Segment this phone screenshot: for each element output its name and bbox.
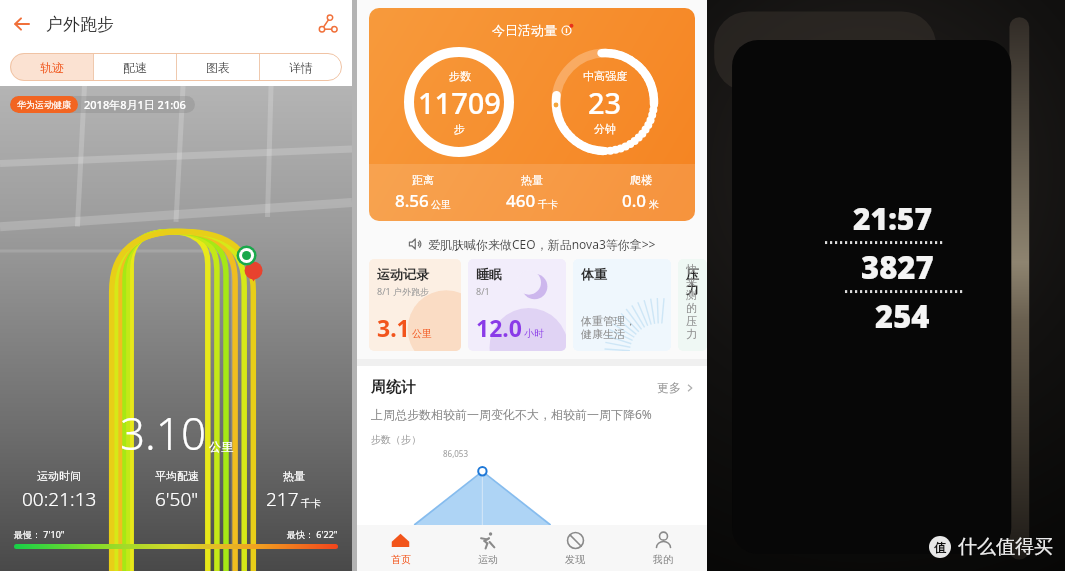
staticText: 体重管理， 健康生活 [581, 314, 636, 341]
staticText: 460 [506, 189, 536, 212]
staticText: 步 [454, 122, 465, 136]
staticText: 86,053 [443, 448, 469, 459]
staticText: 中高强度 [583, 69, 627, 83]
staticText: 21:57 [853, 198, 932, 239]
staticText: 热量 [283, 469, 305, 483]
staticText: 2018年8月1日 21:06 [84, 97, 186, 112]
staticText: 8/1 [476, 285, 490, 297]
staticText: 首页 [391, 553, 411, 566]
button[interactable]: 压力 [678, 259, 707, 351]
staticText: 户外跑步 [46, 14, 114, 35]
staticText: 最快： 6'22" [287, 528, 338, 540]
staticText: 距离 [412, 173, 434, 187]
button[interactable]: 首页 [357, 525, 444, 571]
staticText: 3.10 [120, 403, 207, 463]
staticText: 11709 [418, 83, 501, 122]
staticText: 发现 [565, 553, 585, 566]
staticText: 值 [934, 540, 946, 555]
staticText: 我的 [653, 553, 673, 566]
button[interactable]: 今日活动量 [369, 8, 695, 221]
staticText: 千卡 [538, 198, 558, 211]
button[interactable]: 周统计 [357, 366, 707, 525]
staticText: 分钟 [594, 122, 616, 136]
staticText: 运动 [478, 553, 498, 566]
staticText: 更多 [657, 380, 681, 395]
button[interactable]: 体重 [573, 259, 671, 351]
staticText: 轨迹 [40, 60, 64, 75]
button[interactable]: 发现 [531, 525, 619, 571]
staticText: 快来测 的压力 [686, 262, 707, 341]
staticText: 睡眠 [476, 266, 502, 282]
staticText: 上周总步数相较前一周变化不大，相较前一周下降6% [371, 406, 652, 422]
staticText: 配速 [123, 60, 147, 75]
staticText: 步数（步） [371, 433, 421, 446]
staticText: 今日活动量 [492, 22, 557, 38]
staticText: 图表 [206, 60, 230, 75]
staticText: 华为运动健康 [17, 99, 71, 110]
button[interactable]: 运动记录 [369, 259, 461, 351]
staticText: 00:21:13 [22, 486, 97, 512]
staticText: 平均配速 [155, 469, 199, 483]
button[interactable]: 详情 [260, 53, 342, 81]
staticText: 步数 [449, 69, 471, 83]
staticText: 6'50" [155, 486, 199, 512]
button[interactable]: 运动 [444, 525, 531, 571]
staticText: 8/1 户外跑步 [377, 285, 429, 297]
staticText: 热量 [521, 173, 543, 187]
staticText: 爱肌肤喊你来做CEO，新品nova3等你拿>> [428, 236, 656, 252]
staticText: 217 [266, 486, 299, 512]
staticText: 最慢： 7'10" [14, 528, 65, 540]
button[interactable]: 爱肌肤喊你来做CEO，新品nova3等你拿>> [357, 229, 707, 259]
staticText: 公里 [431, 198, 451, 211]
button[interactable]: 轨迹 [10, 53, 93, 81]
staticText: 8.56 [395, 189, 429, 212]
staticText: 详情 [289, 60, 313, 75]
button[interactable]: 我的 [619, 525, 707, 571]
staticText: 千卡 [301, 497, 321, 510]
staticText: 运动记录 [377, 266, 429, 282]
staticText: 0.0 [622, 189, 647, 212]
staticText: 米 [649, 198, 659, 211]
staticText: 压力 [686, 266, 707, 298]
staticText: 3.1 [377, 312, 410, 343]
staticText: 运动时间 [37, 469, 81, 483]
staticText: 12.0 [476, 312, 522, 343]
staticText: 小时 [524, 327, 544, 340]
button[interactable]: Back [0, 1, 46, 47]
staticText: 254 [875, 295, 930, 337]
staticText: 周统计 [371, 378, 416, 397]
button[interactable]: Share [304, 0, 352, 48]
staticText: 什么值得买 [958, 535, 1053, 559]
button[interactable]: 图表 [177, 53, 259, 81]
staticText: 23 [588, 83, 622, 122]
button[interactable]: 睡眠 [468, 259, 566, 351]
staticText: 公里 [412, 327, 432, 340]
staticText: 体重 [581, 266, 607, 282]
staticText: 公里 [209, 439, 233, 454]
staticText: 3827 [861, 246, 934, 288]
button[interactable]: 配速 [94, 53, 176, 81]
staticText: 爬楼 [630, 173, 652, 187]
